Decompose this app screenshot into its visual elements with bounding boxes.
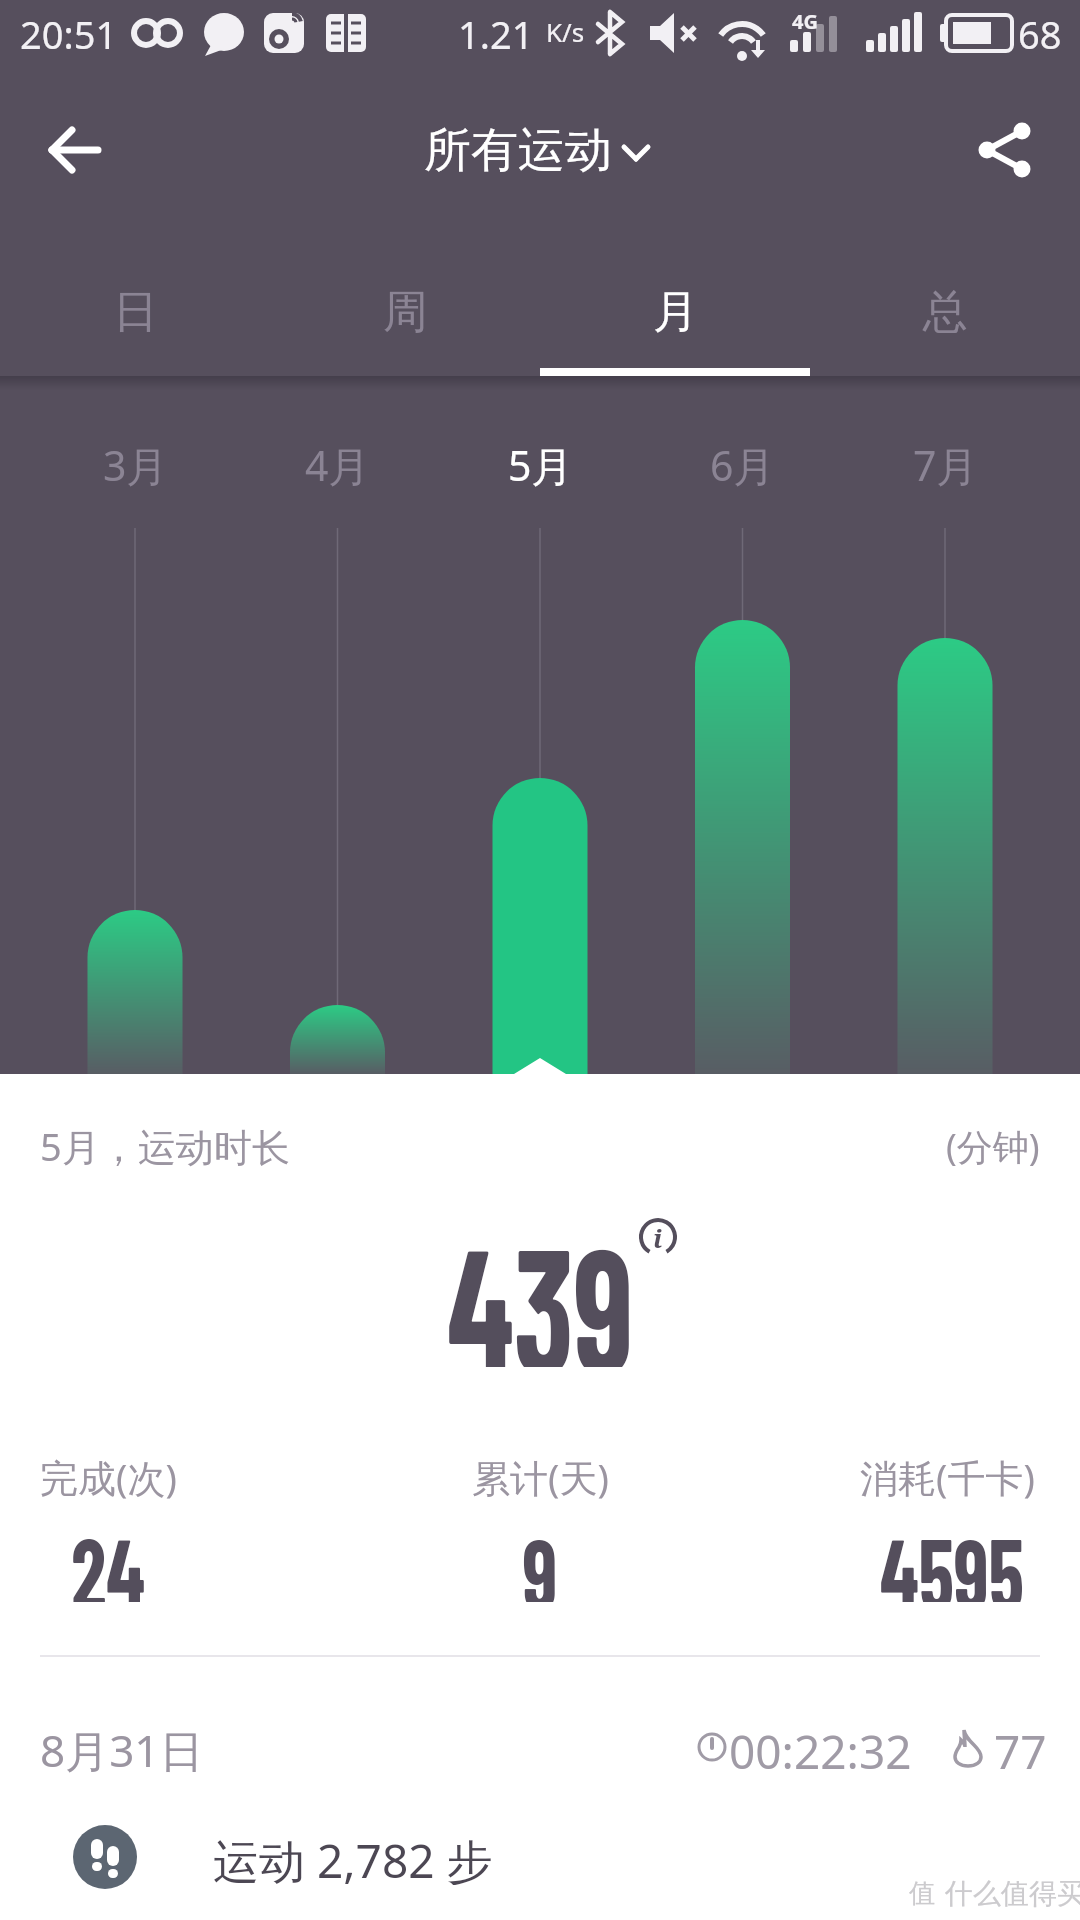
button[interactable]: 8月31日 [40, 1720, 340, 1776]
staticText: 24 [71, 1510, 146, 1602]
staticText: 4G [792, 8, 818, 32]
staticText: 439 [447, 1199, 634, 1367]
button[interactable]: 周 [270, 248, 540, 376]
staticText: 日 [113, 284, 158, 341]
staticText: 9 [522, 1510, 558, 1602]
staticText: 累计(天) [472, 1451, 609, 1503]
staticText: 5月 [508, 437, 573, 493]
button[interactable]: 6月 [672, 435, 812, 495]
button[interactable]: 7月 [875, 435, 1015, 495]
button[interactable] [960, 105, 1050, 195]
button[interactable] [30, 105, 120, 195]
staticText: 7月 [913, 437, 978, 493]
button[interactable]: 4月 [267, 435, 407, 495]
staticText: 消耗(千卡) [860, 1451, 1035, 1503]
staticText: 完成(次) [40, 1451, 177, 1503]
button[interactable]: 5月 [470, 435, 610, 495]
staticText: 8月31日 [40, 1720, 204, 1776]
button[interactable]: 3月 [65, 435, 205, 495]
staticText: 所有运动 [424, 121, 612, 180]
button[interactable]: 运动 2,782 步 [213, 1829, 613, 1885]
staticText: 1.21 [458, 8, 534, 58]
staticText: 总 [923, 284, 968, 341]
button[interactable]: 总 [810, 248, 1080, 376]
staticText: K/s [546, 14, 585, 49]
staticText: i [653, 1220, 663, 1255]
staticText: 5月，运动时长 [40, 1120, 290, 1172]
button[interactable]: 所有运动 [424, 121, 656, 180]
staticText: 6月 [710, 437, 775, 493]
staticText: 20:51 [20, 8, 118, 58]
staticText: (分钟) [946, 1122, 1040, 1171]
staticText: 4月 [305, 437, 370, 493]
staticText: 运动 2,782 步 [213, 1829, 493, 1885]
staticText: 月 [653, 284, 698, 341]
staticText: 值 [909, 1877, 935, 1910]
staticText: 4595 [880, 1510, 1024, 1602]
staticText: 00:22:32 [729, 1720, 912, 1776]
staticText: 77 [994, 1720, 1047, 1776]
staticText: 3月 [103, 437, 168, 493]
button[interactable] [73, 1825, 137, 1889]
staticText: 周 [383, 284, 428, 341]
staticText: 68 [1018, 8, 1062, 58]
staticText: 什么值得买 [945, 1876, 1080, 1910]
button[interactable]: 月 [540, 248, 810, 376]
button[interactable]: 日 [0, 248, 270, 376]
